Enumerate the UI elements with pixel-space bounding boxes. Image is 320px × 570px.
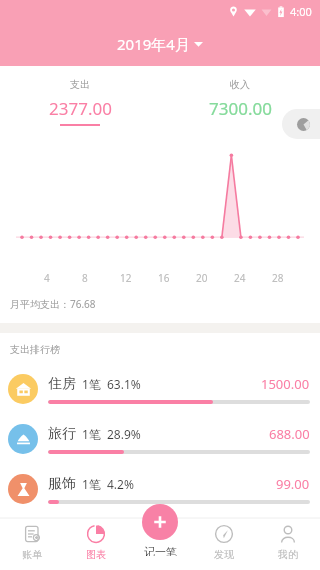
staticText: 8 xyxy=(82,271,88,285)
staticText: 记一笔 xyxy=(144,545,177,556)
button[interactable]: 发现 xyxy=(192,518,256,570)
button[interactable]: 服饰 xyxy=(0,464,320,514)
staticText: 24 xyxy=(234,271,246,285)
staticText: 99.00 xyxy=(276,475,310,493)
staticText: 2019年4月 xyxy=(117,34,190,54)
staticText: 收入 xyxy=(230,78,250,91)
staticText: 1笔 xyxy=(82,476,101,492)
staticText: 20 xyxy=(196,271,208,285)
button[interactable]: Pie chart xyxy=(282,109,320,139)
staticText: 图表 xyxy=(86,548,106,561)
button[interactable]: 旅行 xyxy=(0,414,320,464)
button[interactable]: 2019年4月 xyxy=(107,30,213,58)
staticText: 688.00 xyxy=(269,425,310,443)
staticText: 16 xyxy=(158,271,170,285)
staticText: 账单 xyxy=(22,548,42,561)
staticText: 旅行 xyxy=(48,425,76,443)
button[interactable]: 记一笔 xyxy=(142,504,178,556)
staticText: 2377.00 xyxy=(49,97,112,120)
staticText: 我的 xyxy=(278,548,298,561)
staticText: 1500.00 xyxy=(261,375,310,393)
staticText: 服饰 xyxy=(48,475,76,493)
button[interactable]: 住房 xyxy=(0,364,320,414)
staticText: 住房 xyxy=(48,375,76,393)
staticText: 支出 xyxy=(70,78,90,91)
button[interactable]: 我的 xyxy=(256,518,320,570)
staticText: 7300.00 xyxy=(209,97,272,120)
staticText: 1笔 xyxy=(82,376,101,392)
staticText: 支出排行榜 xyxy=(10,343,60,356)
staticText: 月平均支出：76.68 xyxy=(10,297,96,311)
staticText: 4:00 xyxy=(290,4,312,19)
staticText: 63.1% xyxy=(107,376,141,392)
staticText: 12 xyxy=(120,271,132,285)
staticText: 发现 xyxy=(214,548,234,561)
staticText: 28.9% xyxy=(107,426,141,442)
staticText: 4 xyxy=(44,271,50,285)
button[interactable]: 图表 xyxy=(64,518,128,570)
staticText: 4.2% xyxy=(107,476,134,492)
button[interactable]: 账单 xyxy=(0,518,64,570)
staticText: 28 xyxy=(272,271,284,285)
staticText: 1笔 xyxy=(82,426,101,442)
